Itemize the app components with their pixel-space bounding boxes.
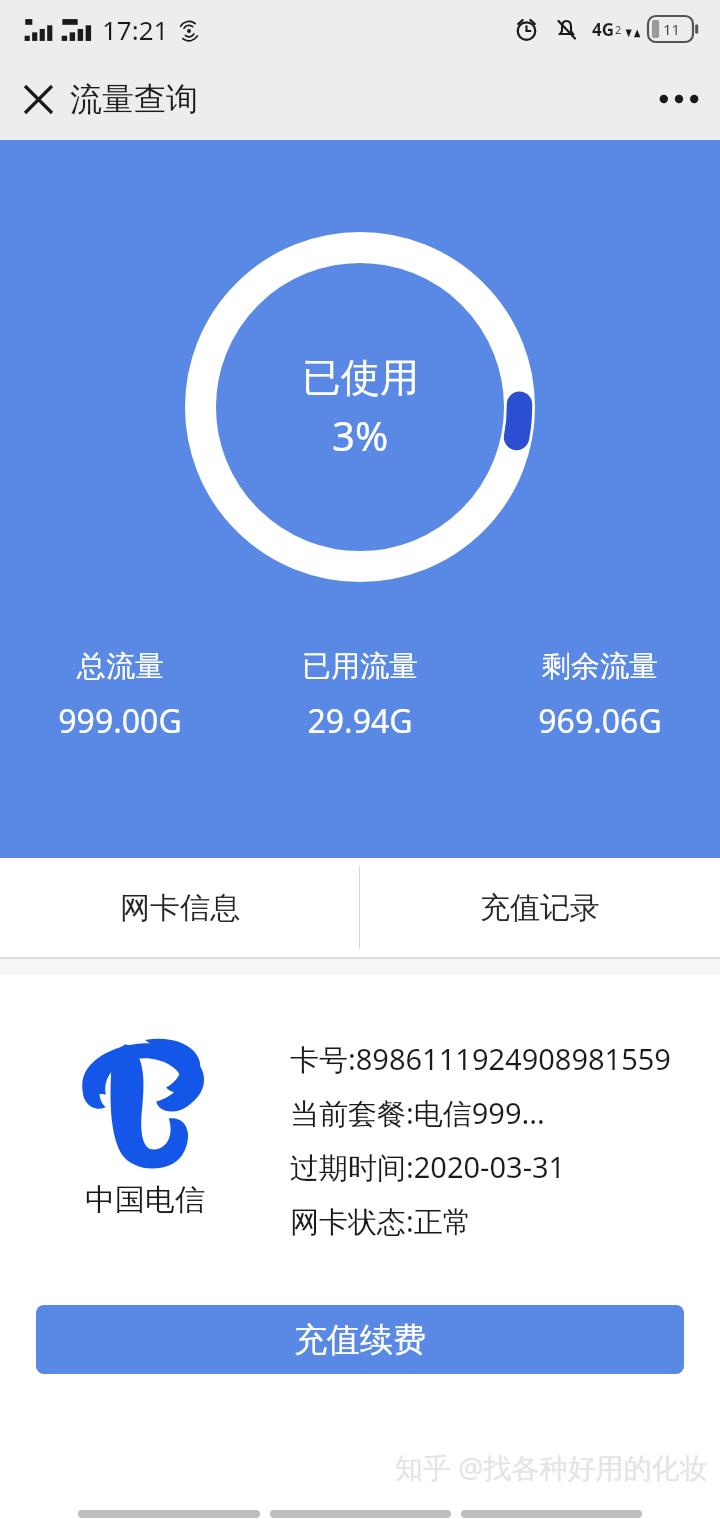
- button[interactable]: 充值记录: [360, 858, 720, 957]
- staticText: 网卡信息: [120, 889, 240, 927]
- staticText: 11: [663, 19, 681, 39]
- staticText: 969.06G: [538, 699, 662, 743]
- staticText: 3%: [332, 408, 389, 462]
- staticText: 过期时间:2020-03-31: [290, 1147, 566, 1187]
- staticText: 知乎 @找各种好用的化妆: [395, 1448, 708, 1486]
- staticText: 充值续费: [294, 1319, 426, 1361]
- staticText: 2: [615, 22, 622, 37]
- staticText: 总流量: [77, 648, 164, 685]
- staticText: 流量查询: [70, 79, 198, 119]
- button[interactable]: More options: [650, 70, 708, 128]
- staticText: 卡号:8986111924908981559: [290, 1039, 671, 1079]
- staticText: 4G: [592, 18, 615, 41]
- staticText: 已使用: [302, 353, 419, 402]
- staticText: 29.94G: [307, 699, 413, 743]
- button[interactable]: 网卡信息: [0, 858, 359, 957]
- staticText: 已用流量: [302, 648, 418, 685]
- staticText: 中国电信: [85, 1181, 205, 1219]
- staticText: 999.00G: [58, 699, 182, 743]
- button[interactable]: 充值续费: [36, 1305, 684, 1374]
- staticText: 充值记录: [480, 889, 600, 927]
- staticText: 17:21: [102, 12, 169, 47]
- staticText: 网卡状态:正常: [290, 1201, 472, 1241]
- button[interactable]: Close: [10, 71, 66, 127]
- staticText: 当前套餐:电信999...: [290, 1093, 545, 1133]
- staticText: 剩余流量: [542, 648, 658, 685]
